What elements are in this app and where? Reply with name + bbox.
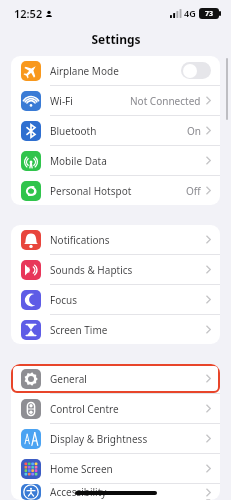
button[interactable]: Control Centre	[11, 394, 220, 423]
staticText: Airplane Mode	[50, 64, 119, 78]
button[interactable]: Wi-Fi	[11, 86, 220, 115]
staticText: 12:52	[14, 6, 43, 21]
button[interactable]: General	[11, 364, 220, 393]
button[interactable]: Notifications	[11, 225, 220, 254]
staticText: On	[187, 124, 201, 138]
button[interactable]: Screen Time	[11, 315, 220, 344]
button[interactable]: Display & Brightness	[11, 424, 220, 453]
button[interactable]: Bluetooth	[11, 116, 220, 145]
staticText: Personal Hotspot	[50, 184, 132, 198]
staticText: 73	[205, 9, 214, 19]
staticText: Home Screen	[50, 462, 113, 476]
button[interactable]: Focus	[11, 285, 220, 314]
staticText: Sounds & Haptics	[50, 263, 133, 277]
staticText: Bluetooth	[50, 124, 97, 138]
staticText: General	[50, 372, 87, 386]
staticText: Screen Time	[50, 323, 108, 337]
staticText: Focus	[50, 293, 78, 307]
staticText: Off	[186, 184, 201, 198]
staticText: Settings	[91, 31, 141, 47]
staticText: Not Connected	[130, 94, 201, 108]
button[interactable]: Mobile Data	[11, 146, 220, 175]
staticText: Wi-Fi	[50, 94, 73, 108]
staticText: Mobile Data	[50, 154, 107, 168]
button[interactable]: Sounds & Haptics	[11, 255, 220, 284]
button[interactable]: Airplane Mode toggle	[181, 62, 211, 79]
staticText: Accessibility	[50, 485, 107, 499]
button[interactable]: Airplane Mode	[11, 56, 220, 85]
staticText: Display & Brightness	[50, 432, 148, 446]
staticText: Notifications	[50, 233, 110, 247]
staticText: Control Centre	[50, 402, 119, 416]
button[interactable]: Home Screen	[11, 454, 220, 483]
button[interactable]: Personal Hotspot	[11, 176, 220, 205]
button[interactable]: Accessibility	[11, 484, 220, 500]
staticText: 4G	[184, 7, 196, 19]
